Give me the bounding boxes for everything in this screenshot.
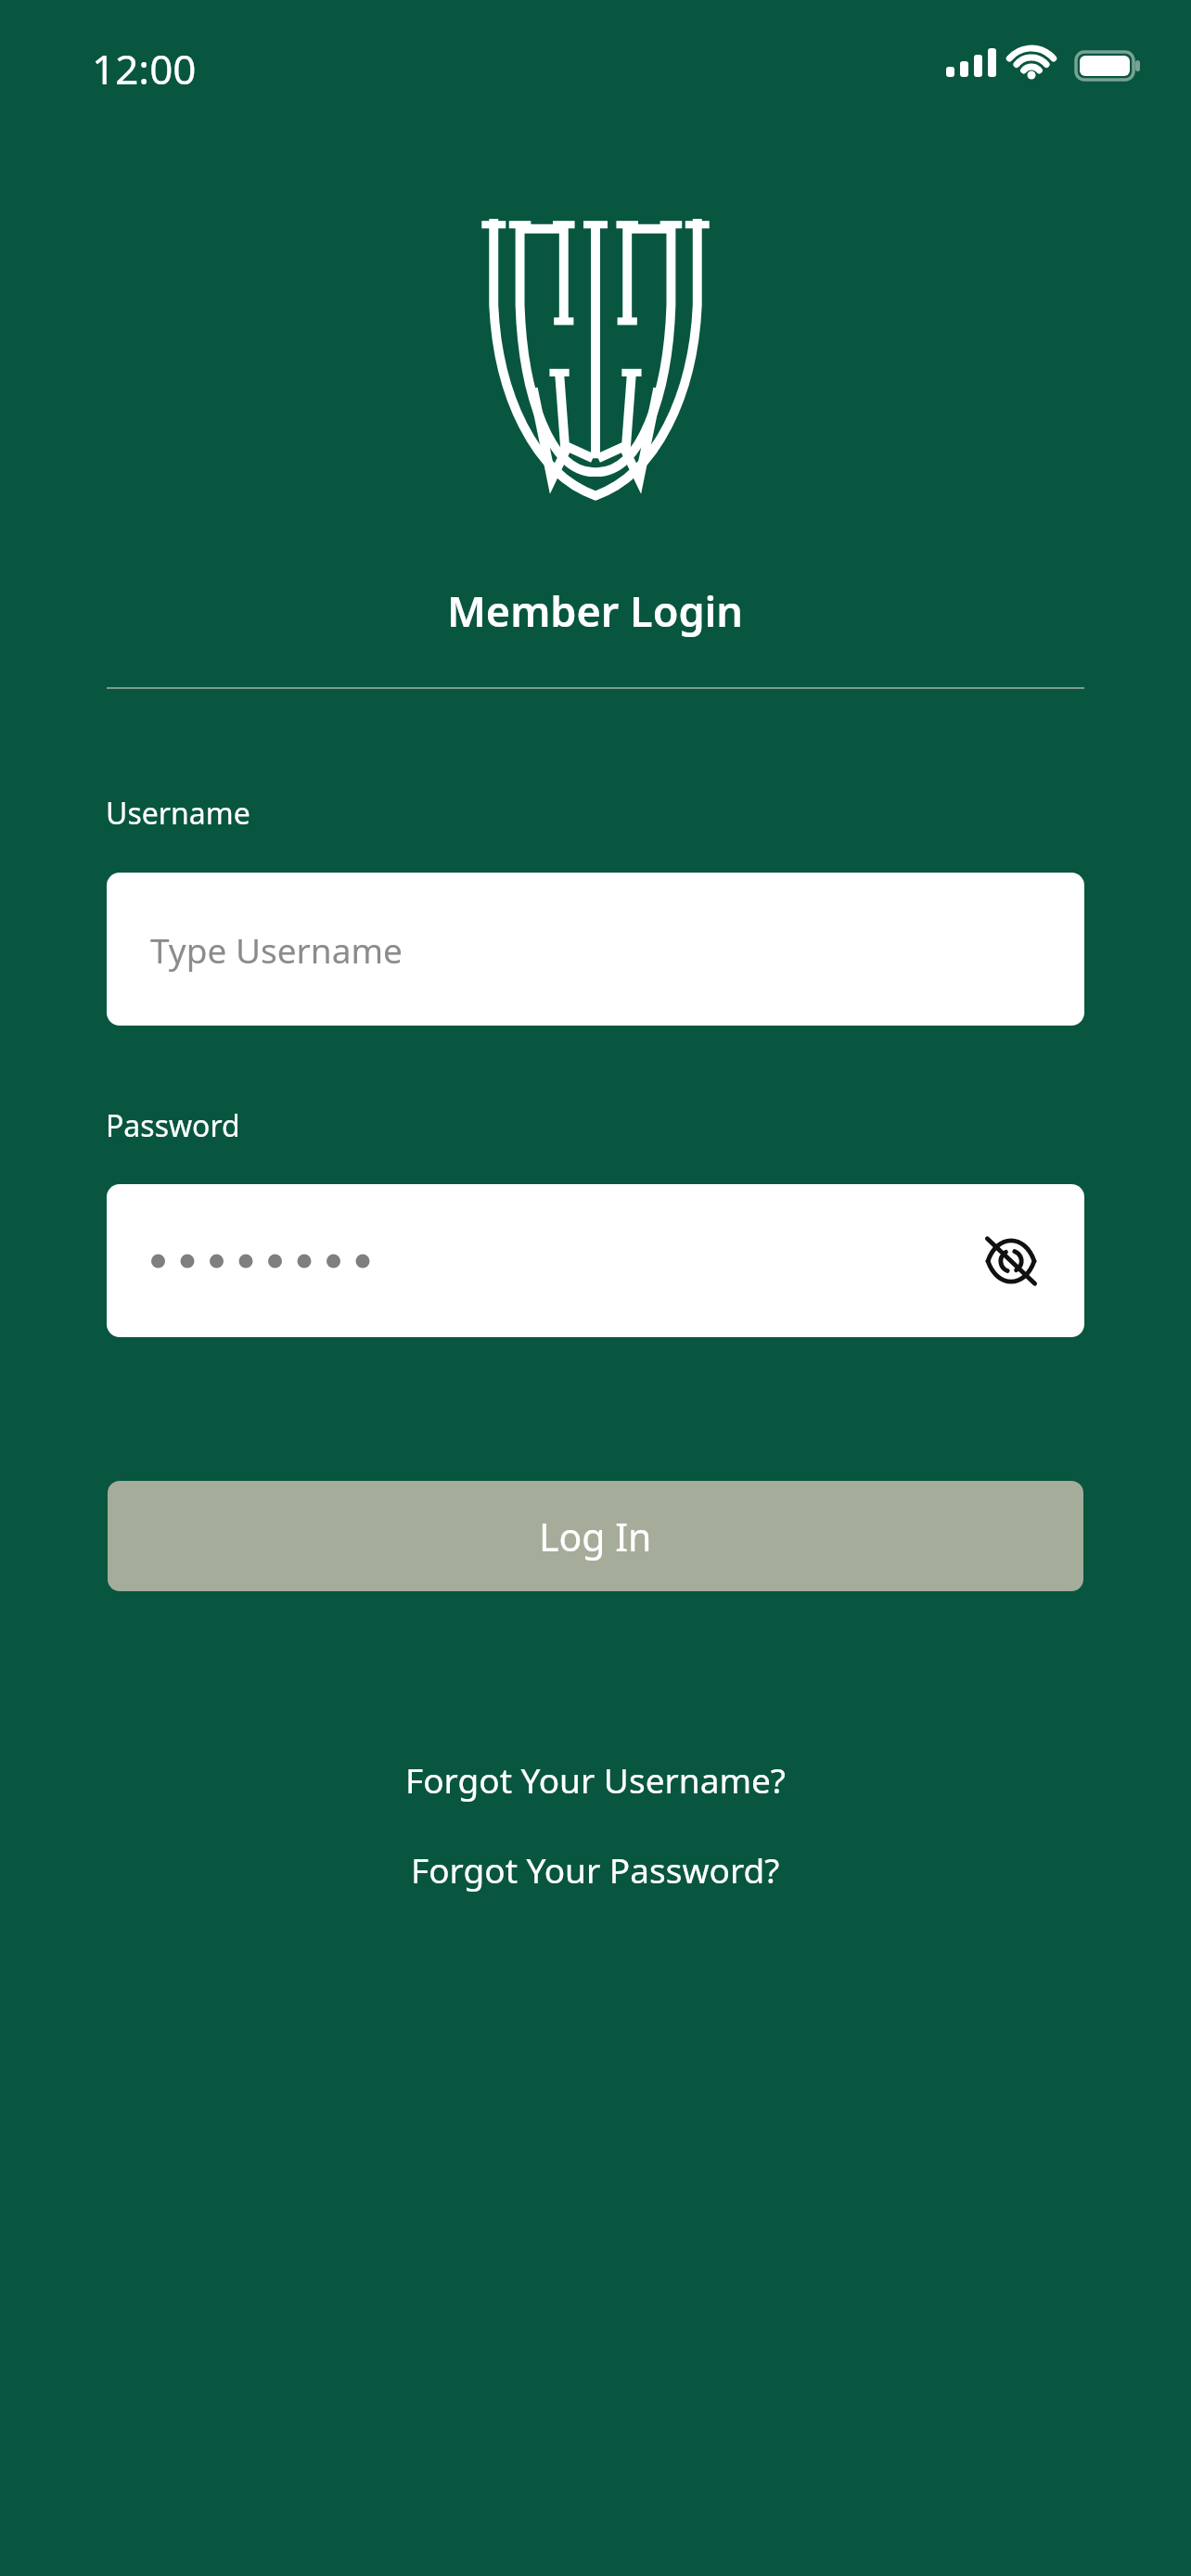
staticText: 12:00 <box>92 41 197 96</box>
staticText: Member Login <box>447 582 744 639</box>
staticText: Password <box>106 1105 240 1146</box>
button[interactable]: Forgot Your Username? <box>383 1751 808 1808</box>
button[interactable]: Log In <box>108 1481 1083 1591</box>
button[interactable]: Show password <box>107 1184 1084 1337</box>
button[interactable]: Forgot Your Password? <box>389 1841 802 1898</box>
staticText: Forgot Your Username? <box>405 1756 786 1803</box>
staticText: Type Username <box>150 926 403 973</box>
staticText: Forgot Your Password? <box>411 1846 780 1893</box>
staticText: Log In <box>539 1511 652 1562</box>
button[interactable]: Show password <box>971 1221 1051 1301</box>
staticText: Username <box>106 793 250 834</box>
button[interactable]: Type Username <box>107 873 1084 1026</box>
